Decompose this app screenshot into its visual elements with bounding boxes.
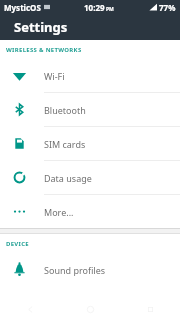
staticText: MysticOS bbox=[4, 2, 41, 13]
staticText: DEVICE bbox=[6, 240, 29, 248]
staticText: SIM cards bbox=[44, 138, 86, 150]
staticText: Settings bbox=[14, 18, 68, 36]
staticText: Wi-Fi bbox=[44, 70, 65, 82]
button[interactable]: More... bbox=[0, 195, 180, 228]
button[interactable]: SIM cards bbox=[0, 127, 180, 160]
staticText: 77% bbox=[159, 2, 176, 13]
staticText: 10:29 bbox=[84, 2, 105, 13]
staticText: WIRELESS & NETWORKS bbox=[6, 46, 82, 54]
button[interactable]: Data usage bbox=[0, 161, 180, 194]
staticText: Bluetooth bbox=[44, 104, 86, 116]
button[interactable]: Wi-Fi bbox=[0, 59, 180, 92]
button[interactable]: Bluetooth bbox=[0, 93, 180, 126]
staticText: Sound profiles bbox=[44, 264, 106, 276]
staticText: More... bbox=[44, 206, 74, 218]
staticText: Data usage bbox=[44, 172, 92, 184]
staticText: PM bbox=[106, 6, 114, 13]
button[interactable]: Sound profiles bbox=[0, 253, 180, 286]
